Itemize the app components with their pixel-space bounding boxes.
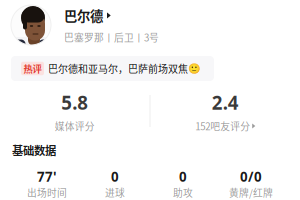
staticText: 巴塞罗那丨后卫丨3号 (64, 30, 159, 44)
staticText: 5.8 (61, 90, 88, 115)
staticText: 热评 (23, 62, 41, 75)
staticText: 进球 (105, 185, 125, 200)
staticText: 0 (179, 168, 187, 185)
staticText: 巴尔德 (64, 6, 103, 25)
staticText: 巴尔德和亚马尔，巴萨前场双焦🙂 (48, 61, 200, 76)
staticText: 媒体评分 (55, 119, 95, 133)
staticText: 黄牌/红牌 (229, 185, 273, 200)
staticText: 77' (37, 168, 57, 185)
staticText: 出场时间 (27, 185, 67, 200)
staticText: 0/0 (240, 168, 262, 185)
button[interactable]: 2.4 (150, 95, 300, 131)
button[interactable]: 热评 (0, 56, 300, 81)
button[interactable]: 5.8 (0, 95, 149, 131)
staticText: 2.4 (212, 90, 239, 115)
staticText: 0 (111, 168, 119, 185)
staticText: 基础数据 (12, 142, 56, 158)
staticText: 152吧友评分 (195, 119, 250, 133)
button[interactable]: 巴尔德 (0, 0, 300, 50)
staticText: 助攻 (173, 185, 193, 200)
